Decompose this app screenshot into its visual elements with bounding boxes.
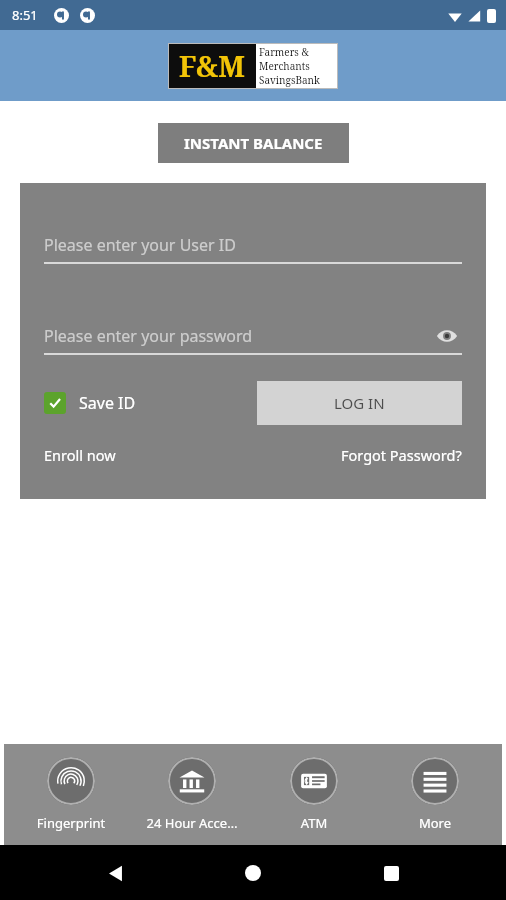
button[interactable]: More [380, 757, 490, 832]
staticText: SavingsBank [259, 73, 320, 87]
button[interactable]: Back [94, 851, 138, 895]
button[interactable]: Recent apps [369, 851, 413, 895]
staticText: More [380, 814, 490, 832]
button[interactable]: LOG IN [257, 381, 462, 425]
staticText: LOG IN [334, 393, 385, 413]
button[interactable]: Save ID [44, 392, 136, 414]
button[interactable]: INSTANT BALANCE [158, 123, 349, 163]
button[interactable]: Enroll now [44, 445, 116, 465]
staticText: Forgot Password? [341, 445, 462, 465]
button[interactable]: ATM [259, 757, 369, 832]
staticText: Enroll now [44, 445, 116, 465]
button[interactable]: 24 Hour Acce… [137, 757, 247, 832]
button[interactable]: Forgot Password? [341, 445, 462, 465]
staticText: ATM [259, 814, 369, 832]
staticText: Farmers & [259, 45, 309, 59]
staticText: Fingerprint [16, 814, 126, 832]
staticText: Merchants [259, 59, 310, 73]
staticText: Save ID [79, 392, 136, 414]
staticText: Please enter your User ID [44, 234, 236, 256]
staticText: Please enter your password [44, 325, 253, 347]
button[interactable]: Fingerprint [16, 757, 126, 832]
staticText: 24 Hour Acce… [137, 814, 247, 832]
staticText: 8:51 [12, 6, 38, 24]
button[interactable]: Home [231, 851, 275, 895]
button[interactable]: Show password [432, 321, 462, 351]
staticText: INSTANT BALANCE [184, 133, 323, 153]
staticText: F&M [179, 47, 245, 85]
